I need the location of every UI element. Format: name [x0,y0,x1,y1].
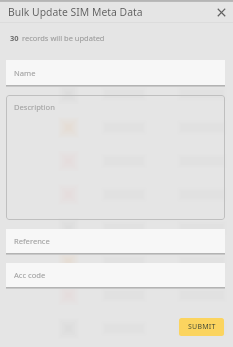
staticText: records will be updated [22,33,105,43]
staticText: 30 [10,33,19,43]
staticText: Description [14,102,55,112]
button[interactable]: SUBMIT [179,318,224,336]
staticText: Name [14,68,36,78]
button[interactable]: Acc code [6,263,225,287]
button[interactable]: Reference [6,229,225,253]
button[interactable]: Close [214,5,229,20]
staticText: Reference [14,236,50,246]
staticText: SUBMIT [188,322,216,332]
staticText: Bulk Update SIM Meta Data [8,5,143,19]
button[interactable]: Name [6,60,225,85]
button[interactable]: Description [6,95,225,220]
staticText: Acc code [14,270,46,280]
